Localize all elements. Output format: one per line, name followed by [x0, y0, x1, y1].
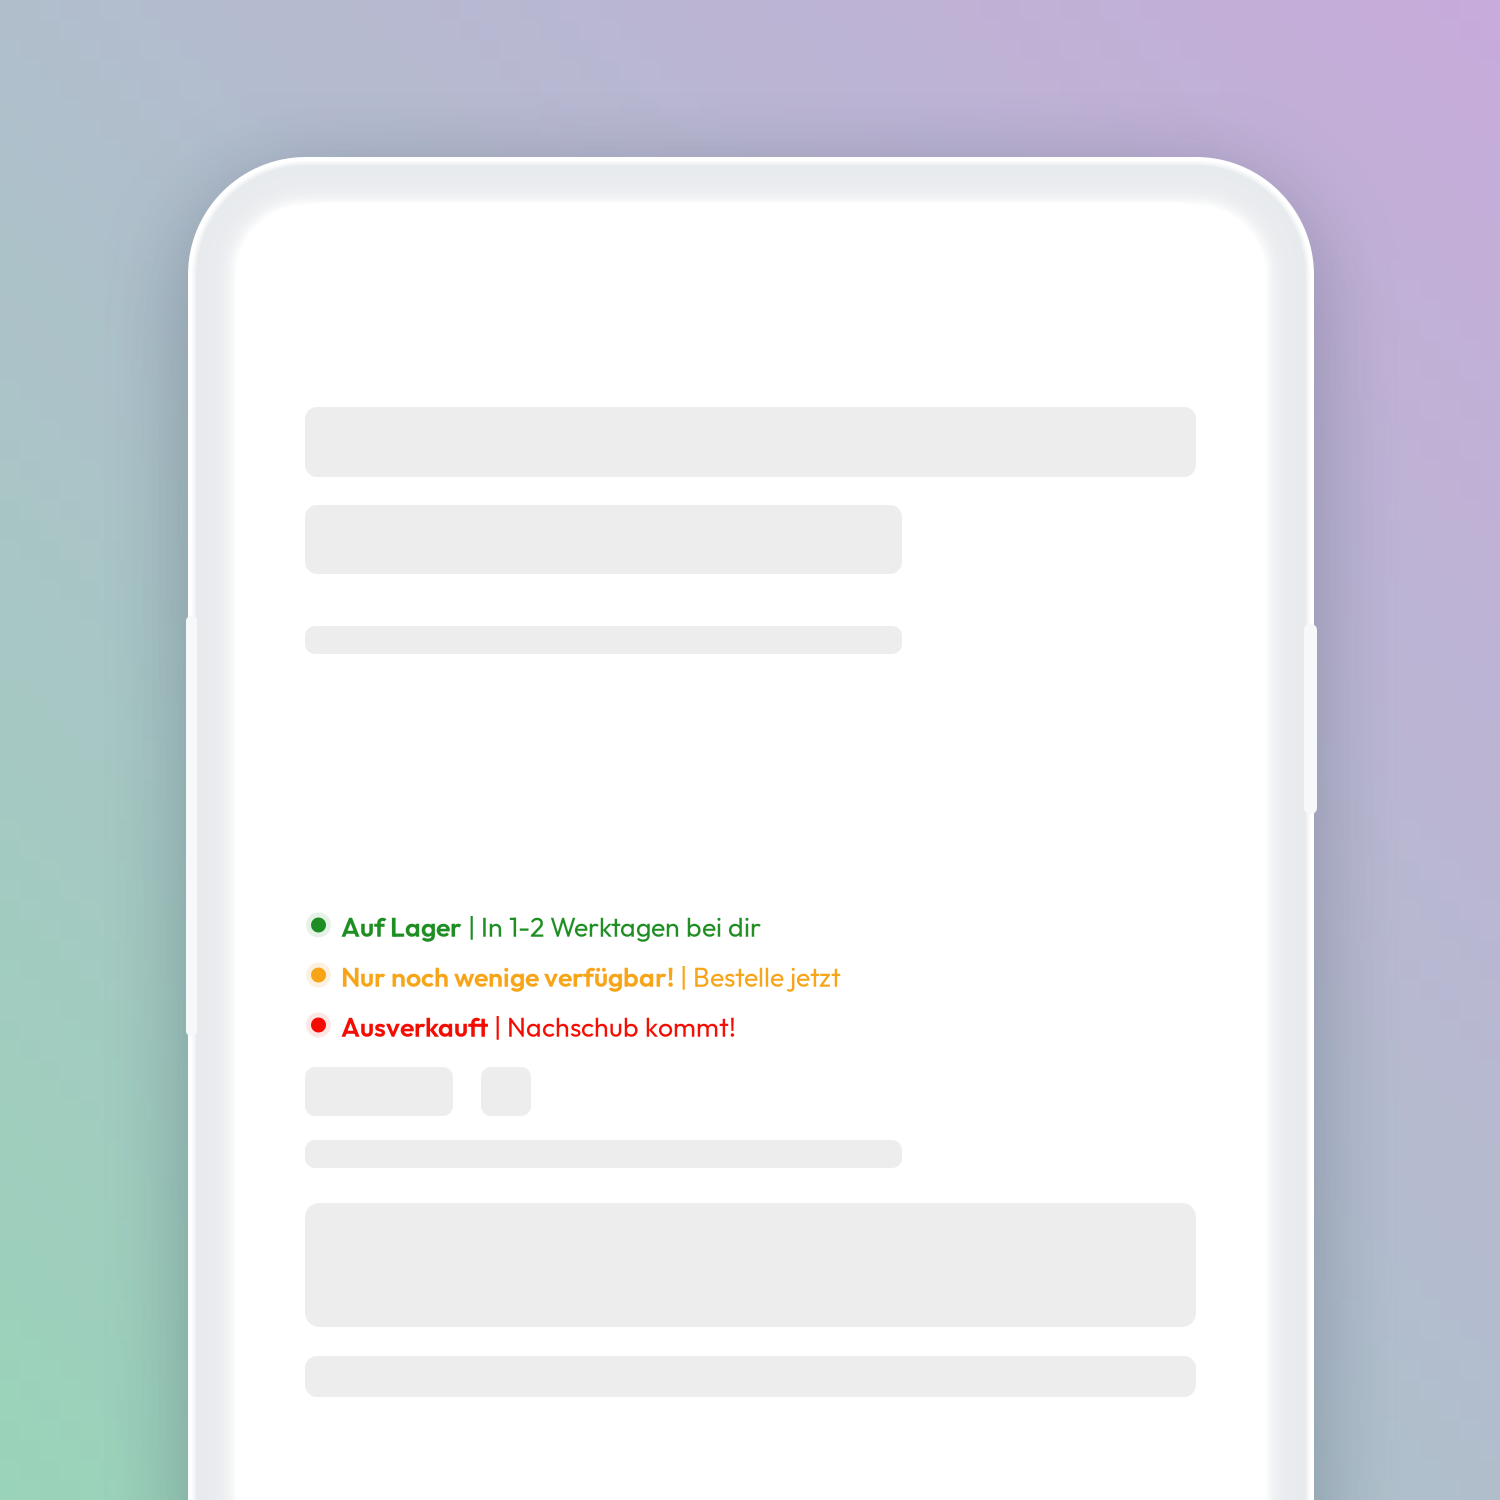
staticText: Nur noch wenige verfügbar! [341, 960, 674, 994]
staticText: | [488, 1010, 507, 1044]
button[interactable]: Nur noch wenige verfügbar – Bestelle jet… [305, 950, 1258, 1000]
staticText: Auf Lager [341, 910, 462, 944]
staticText: Ausverkauft [341, 1010, 488, 1044]
button[interactable]: Ausverkauft – Nachschub kommt [305, 1000, 1258, 1050]
staticText: Nachschub kommt! [507, 1010, 736, 1044]
staticText: Bestelle jetzt [693, 960, 841, 994]
staticText: | [674, 960, 693, 994]
staticText: In 1-2 Werktagen bei dir [481, 910, 761, 944]
button[interactable]: Auf Lager – In 1-2 Werktagen bei dir [305, 900, 1258, 950]
staticText: | [462, 910, 481, 944]
